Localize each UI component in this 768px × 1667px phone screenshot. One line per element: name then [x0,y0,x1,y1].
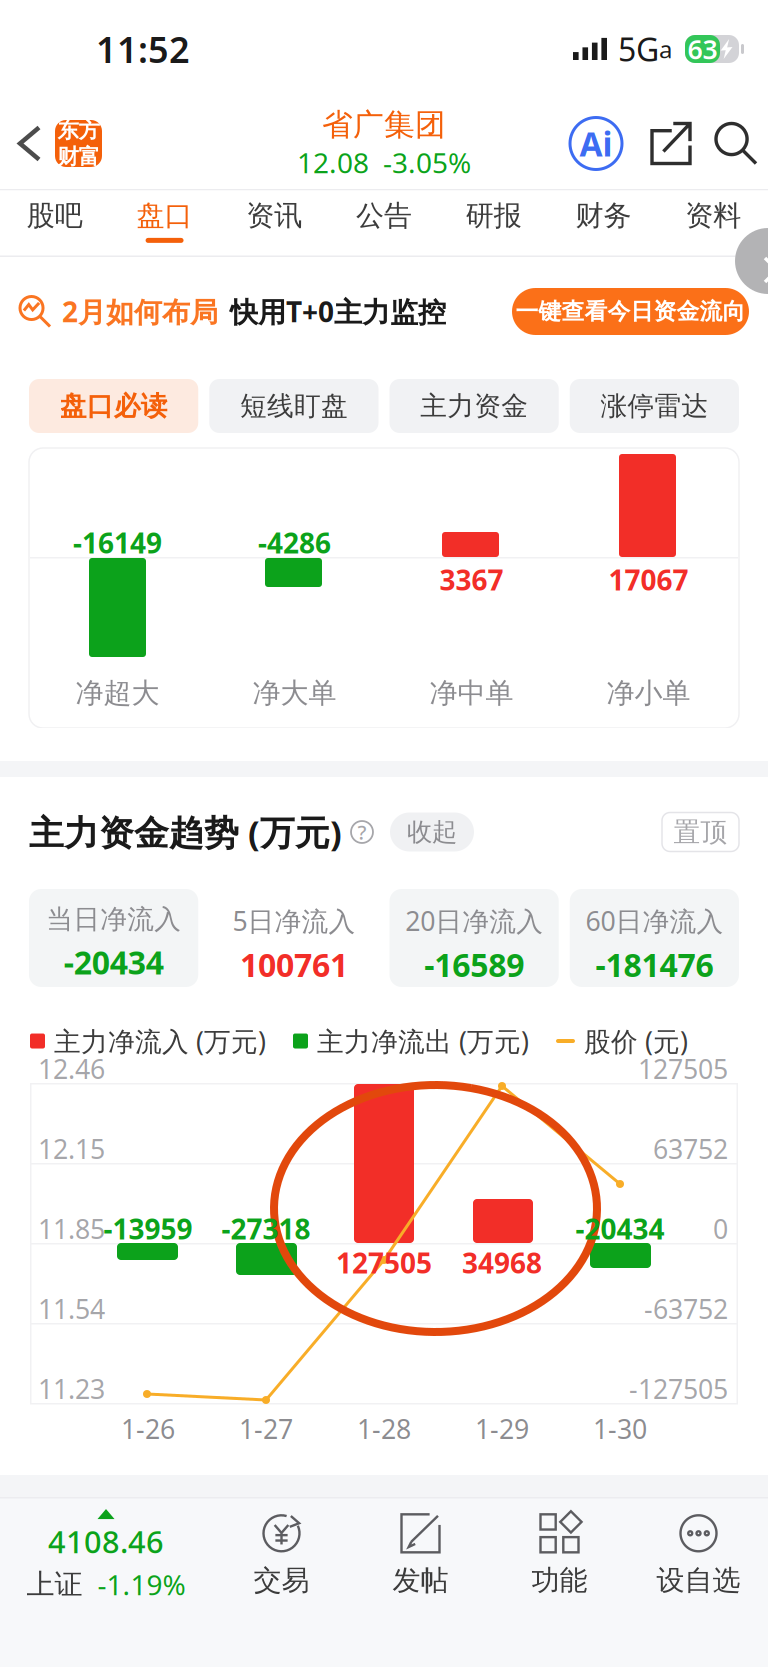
staticText: 100761 [240,943,348,986]
staticText: 净中单 [429,676,513,710]
staticText: 3367 [439,561,503,598]
staticText: a [659,33,672,65]
button[interactable]: 5日净流入 [209,889,378,987]
staticText: ? [357,819,366,845]
staticText: 主力资金 [420,390,528,422]
staticText: -127505 [629,1371,728,1406]
button[interactable]: 20日净流入 [389,889,559,987]
staticText: 财务 [575,198,631,233]
button[interactable]: 短线盯盘 [209,379,378,433]
staticText: 资讯 [246,198,302,233]
staticText: 11.23 [38,1371,105,1406]
button[interactable]: 功能 [490,1514,629,1598]
staticText: 11.85 [38,1211,105,1246]
staticText: 涨停雷达 [600,390,708,422]
button[interactable]: 一键查看今日资金流向 [512,288,749,335]
staticText: 盘口 [137,198,193,233]
staticText: 12.08 -3.05% [297,144,471,181]
staticText: 2月如何布局 [62,293,218,330]
button[interactable]: 东方财富 [55,98,102,189]
staticText: 5G [618,28,659,70]
staticText: 财富 [57,143,99,170]
button[interactable]: 4108.46 [0,1509,212,1603]
staticText: 4108.46 [48,1521,164,1562]
button[interactable]: 财务 [549,190,658,255]
button[interactable]: 60日净流入 [570,889,739,987]
staticText: 资料 [685,198,741,233]
button[interactable]: 盘口必读 [29,379,198,433]
button[interactable]: AI [555,98,637,189]
button[interactable]: 收起 [390,812,474,851]
staticText: 1-29 [475,1411,529,1446]
staticText: 0 [713,1211,728,1246]
button[interactable]: 置顶 [662,812,739,851]
staticText: 当日净流入 [46,903,181,936]
staticText: 交易 [253,1563,309,1598]
button[interactable]: 搜索 [705,98,767,189]
button[interactable]: 涨停雷达 [570,379,739,433]
staticText: -16149 [73,524,162,561]
button[interactable]: 发帖 [351,1514,490,1598]
staticText: 东方 [57,117,99,143]
staticText: 12.15 [38,1131,105,1166]
staticText: 1-26 [121,1411,175,1446]
staticText: 发帖 [392,1563,448,1598]
staticText: 置顶 [673,816,727,848]
staticText: 一键查看今日资金流向 [515,298,745,325]
staticText: 功能 [531,1563,587,1598]
staticText: 127505 [336,1244,432,1281]
staticText: 60日净流入 [585,903,723,938]
staticText: 股价 (元) [584,1023,688,1059]
staticText: 主力资金趋势 (万元) [29,809,342,855]
staticText: -27318 [221,1210,310,1247]
staticText: -1.19% [97,1566,185,1603]
staticText: Ai [579,121,612,166]
staticText: -63752 [644,1291,728,1326]
button[interactable]: 分享 [637,98,705,189]
staticText: 11:52 [96,25,190,73]
staticText: 股吧 [27,198,83,233]
staticText: 11.54 [38,1291,105,1326]
staticText: 1-28 [357,1411,411,1446]
staticText: 主力净流出 (万元) [317,1023,529,1059]
button[interactable]: 关闭 [735,228,768,294]
staticText: 34968 [462,1244,542,1281]
staticText: 净小单 [606,676,690,710]
staticText: 主力净流入 (万元) [54,1023,266,1059]
staticText: -13959 [103,1210,192,1247]
button[interactable]: 设自选 [629,1514,768,1598]
staticText: 17067 [608,561,688,598]
button[interactable]: 股吧 [0,190,110,255]
staticText: -4286 [258,524,331,561]
staticText: 上证 [26,1567,82,1602]
staticText: -20434 [575,1210,664,1247]
staticText: 省广集团 [322,106,446,144]
staticText: 快用T+0主力监控 [230,293,446,330]
staticText: -181476 [595,943,713,986]
button[interactable]: 研报 [439,190,549,255]
button[interactable]: 公告 [329,190,439,255]
staticText: -16589 [424,943,524,986]
button[interactable]: 资讯 [219,190,329,255]
button[interactable]: 主力资金 [389,379,559,433]
staticText: 净大单 [252,676,336,710]
staticText: 63 [687,31,717,67]
staticText: 1-30 [593,1411,647,1446]
staticText: -20434 [64,941,164,983]
staticText: 127505 [638,1051,728,1086]
staticText: 收起 [407,816,457,847]
button[interactable]: 交易 [212,1514,351,1598]
staticText: 5日净流入 [232,903,355,938]
staticText: 设自选 [656,1563,740,1598]
staticText: 12.46 [38,1051,105,1086]
button[interactable]: 当日净流入 [29,889,198,987]
staticText: 63752 [653,1131,728,1166]
staticText: 20日净流入 [405,903,543,938]
staticText: 净超大 [75,676,159,710]
button[interactable]: 盘口 [110,190,219,255]
button[interactable]: 返回 [0,98,55,189]
staticText: 公告 [356,198,412,233]
staticText: 盘口必读 [60,390,168,422]
button[interactable]: 资料 [658,190,768,255]
staticText: 短线盯盘 [240,390,348,422]
